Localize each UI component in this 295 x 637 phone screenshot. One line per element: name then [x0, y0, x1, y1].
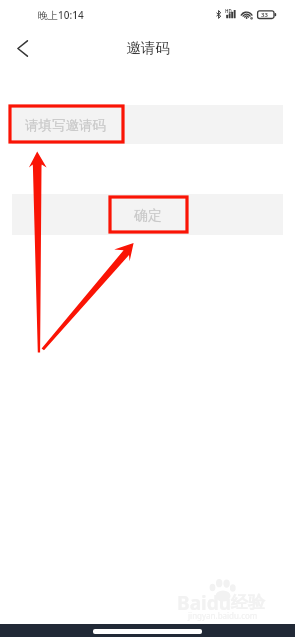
staticText: 确定 — [134, 207, 162, 225]
staticText: jingyan.baidu.com — [188, 610, 258, 621]
staticText: 33 — [261, 11, 268, 19]
staticText: 经验 — [231, 592, 265, 613]
staticText: Baidu — [177, 590, 232, 616]
staticText: HD — [225, 8, 232, 14]
button[interactable]: 确定 — [12, 194, 283, 235]
staticText: 请填写邀请码 — [25, 117, 106, 134]
staticText: 邀请码 — [126, 39, 170, 57]
staticText: 晚上10:14 — [38, 8, 84, 22]
button[interactable]: Back — [0, 26, 44, 70]
button[interactable]: 请填写邀请码 — [12, 105, 283, 144]
